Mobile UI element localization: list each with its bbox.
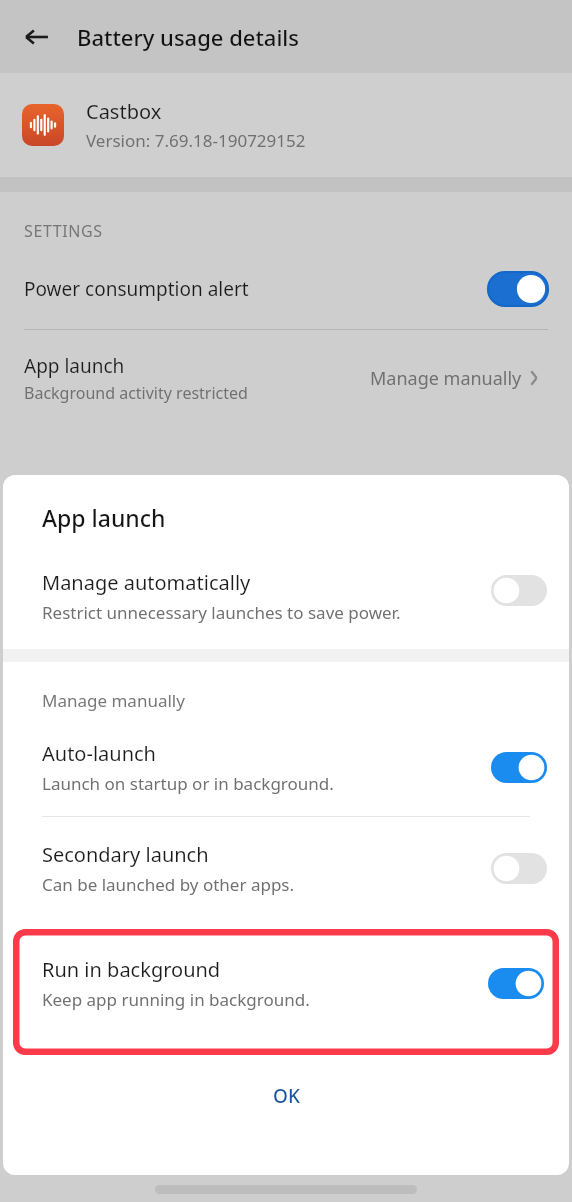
button[interactable]: Secondary launch [3, 841, 569, 896]
staticText: Auto-launch [42, 740, 156, 767]
staticText: Version: 7.69.18-190729152 [86, 129, 306, 152]
staticText: Secondary launch [42, 841, 209, 868]
staticText: Manage manually [42, 689, 185, 712]
staticText: App launch [42, 502, 166, 533]
button[interactable]: Run in background [13, 929, 559, 1055]
staticText: Castbox [86, 98, 162, 125]
button[interactable]: Auto-launch [3, 740, 569, 795]
staticText: Keep app running in background. [42, 988, 310, 1011]
staticText: Background activity restricted [24, 382, 248, 404]
staticText: Manage manually [370, 366, 522, 391]
staticText: Launch on startup or in background. [42, 772, 334, 795]
staticText: OK [273, 1083, 300, 1109]
staticText: Battery usage details [77, 22, 300, 52]
staticText: Restrict unnecessary launches to save po… [42, 601, 401, 624]
button[interactable]: Power consumption alert [0, 264, 572, 314]
staticText: Power consumption alert [24, 276, 249, 302]
button[interactable]: Back [13, 13, 61, 61]
staticText: Can be launched by other apps. [42, 873, 295, 896]
staticText: Manage automatically [42, 569, 251, 596]
button[interactable]: OK [3, 1068, 569, 1124]
button[interactable]: Castbox [0, 73, 572, 177]
button[interactable]: Manage automatically [3, 569, 569, 624]
staticText: App launch [24, 353, 125, 379]
button[interactable]: App launch [0, 343, 572, 413]
staticText: Run in background [42, 956, 221, 983]
staticText: SETTINGS [24, 220, 103, 242]
